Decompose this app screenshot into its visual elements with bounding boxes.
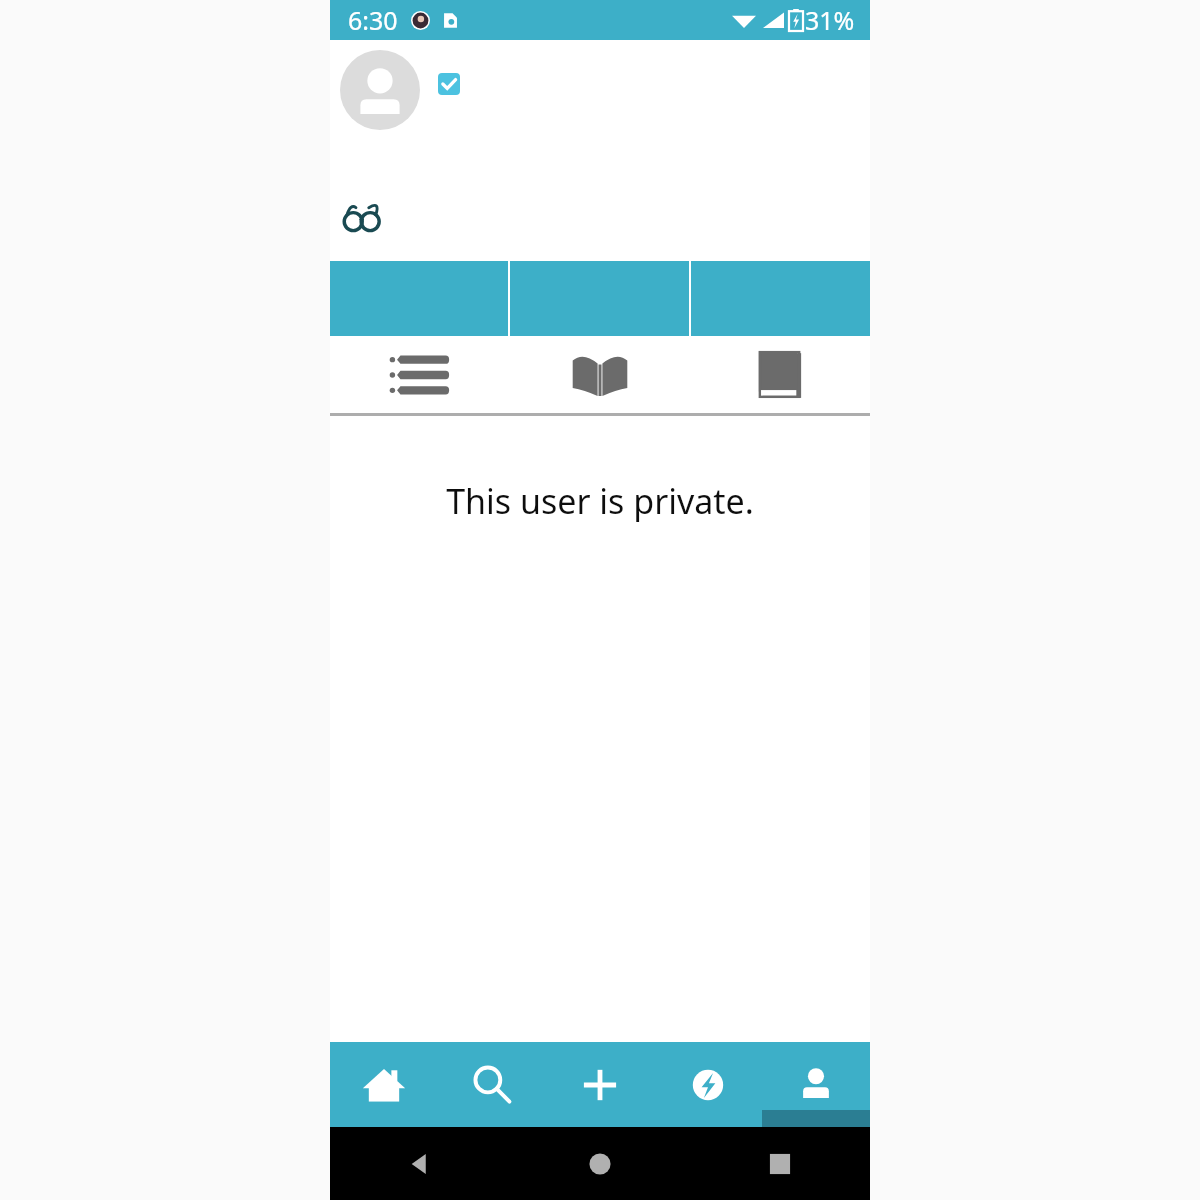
button[interactable]: Currently reading: [510, 336, 690, 413]
button[interactable]: Add: [546, 1042, 654, 1127]
button[interactable]: Profile photo: [340, 50, 420, 130]
other: Verified account: [438, 73, 460, 95]
button[interactable]: Search: [438, 1042, 546, 1127]
staticText: 31%: [805, 3, 855, 37]
button[interactable]: Library: [690, 336, 870, 413]
staticText: 6:30: [348, 3, 398, 37]
button[interactable]: Recent apps: [690, 1127, 870, 1200]
staticText: This user is private.: [446, 478, 754, 524]
button[interactable]: Lists: [330, 336, 510, 413]
button[interactable]: Profile: [762, 1042, 870, 1127]
button[interactable]: Home: [510, 1127, 690, 1200]
button[interactable]: Activity: [654, 1042, 762, 1127]
button[interactable]: Back: [330, 1127, 510, 1200]
button[interactable]: Home: [330, 1042, 438, 1127]
